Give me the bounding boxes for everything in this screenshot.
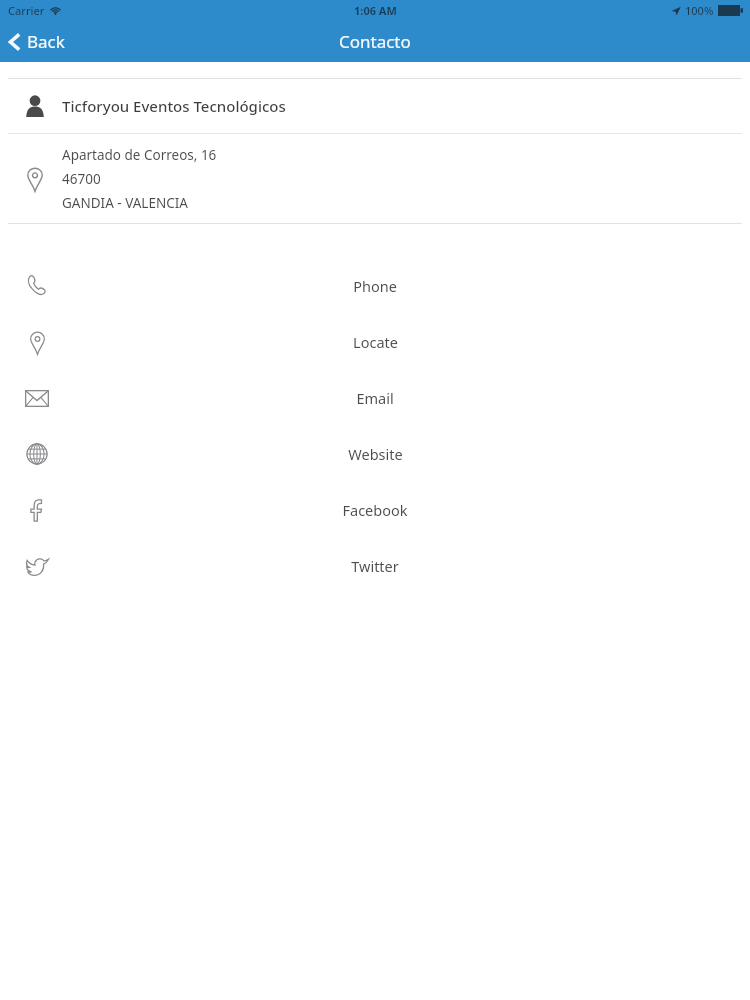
staticText: Locate [353,332,398,352]
button[interactable]: Facebook [0,482,750,538]
staticText: Carrier [8,3,45,18]
staticText: Contacto [339,30,411,53]
other: Facebook [29,498,45,522]
other: Locate [28,330,47,355]
staticText: 1:06 AM [354,3,397,18]
staticText: Apartado de Correos, 16 [62,146,217,164]
staticText: GANDIA - VALENCIA [62,194,188,212]
button[interactable]: Ticforyou Eventos Tecnológicos [8,79,742,133]
button[interactable]: Locate [0,314,750,370]
button[interactable]: Apartado de Correos, 16 [8,134,742,223]
staticText: Email [356,388,394,408]
button[interactable]: Twitter [0,538,750,594]
other: Email [25,390,49,407]
staticText: Twitter [351,556,399,576]
staticText: Phone [353,276,397,296]
other: Twitter [26,556,49,576]
button[interactable]: Phone [0,258,750,314]
button[interactable]: Email [0,370,750,426]
staticText: 100% [685,3,714,18]
staticText: Website [348,444,403,464]
staticText: Facebook [342,500,408,520]
button[interactable]: Back [0,24,79,59]
other: Phone [27,275,47,297]
staticText: Ticforyou Eventos Tecnológicos [62,96,286,116]
button[interactable]: Website [0,426,750,482]
staticText: 46700 [62,170,101,188]
other: Website [26,443,48,465]
staticText: Back [27,30,65,53]
